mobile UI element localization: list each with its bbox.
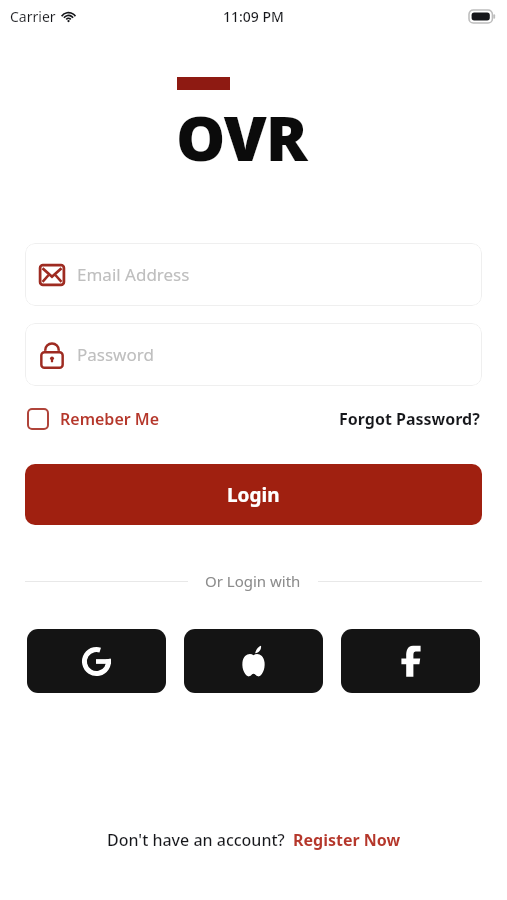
button[interactable]: Email Address [25, 243, 482, 306]
staticText: Login [227, 482, 280, 508]
button[interactable]: Login [25, 464, 482, 525]
button[interactable]: Forgot Password? [339, 408, 480, 430]
button[interactable]: Password [25, 323, 482, 386]
staticText: Or Login with [205, 571, 301, 591]
button[interactable]: Remeber Me [27, 408, 160, 430]
staticText: Email Address [77, 263, 190, 286]
staticText: 11:09 PM [223, 7, 284, 26]
staticText: OVR [176, 95, 307, 179]
staticText: Remeber Me [60, 408, 160, 430]
button[interactable]: Sign in with Apple [184, 629, 323, 693]
button[interactable]: Sign in with Google [27, 629, 166, 693]
staticText: Don't have an account? [107, 829, 285, 851]
staticText: Password [77, 343, 154, 366]
button[interactable]: Register Now [293, 829, 401, 851]
button[interactable]: Sign in with Facebook [341, 629, 480, 693]
staticText: Forgot Password? [339, 408, 480, 430]
staticText: Register Now [293, 829, 401, 851]
staticText: Carrier [10, 7, 56, 26]
